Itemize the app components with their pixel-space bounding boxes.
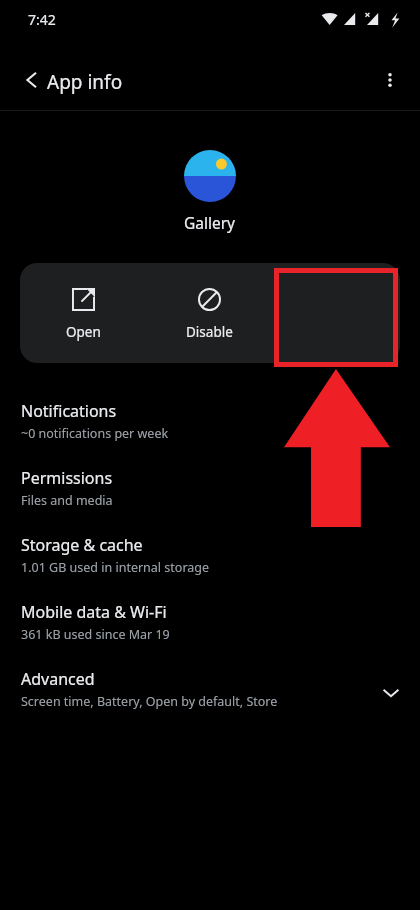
button[interactable]: Force stop xyxy=(273,263,400,363)
staticText: Notifications xyxy=(21,400,117,422)
staticText: Advanced xyxy=(21,668,95,690)
staticText: Permissions xyxy=(21,467,113,489)
staticText: 1.01 GB used in internal storage xyxy=(21,559,210,576)
staticText: Storage & cache xyxy=(21,534,143,556)
button[interactable]: Storage & cache xyxy=(0,522,420,589)
button[interactable]: Open xyxy=(20,263,146,363)
staticText: App info xyxy=(47,69,123,95)
staticText: 361 kB used since Mar 19 xyxy=(21,626,170,643)
button[interactable]: Disable xyxy=(146,263,273,363)
button[interactable]: Advanced xyxy=(0,656,420,723)
button[interactable]: More options xyxy=(366,56,414,104)
button[interactable]: Notifications xyxy=(0,388,420,455)
button[interactable]: Back xyxy=(8,56,56,104)
staticText: ~0 notifications per week xyxy=(21,425,169,442)
staticText: Disable xyxy=(186,323,233,341)
staticText: Mobile data & Wi-Fi xyxy=(21,601,167,623)
staticText: 7:42 xyxy=(28,10,56,29)
button[interactable]: Permissions xyxy=(0,455,420,522)
staticText: Gallery xyxy=(184,212,236,233)
staticText: Screen time, Battery, Open by default, S… xyxy=(21,693,278,710)
button[interactable]: Mobile data & Wi-Fi xyxy=(0,589,420,656)
staticText: Open xyxy=(66,323,101,341)
staticText: Files and media xyxy=(21,492,113,509)
